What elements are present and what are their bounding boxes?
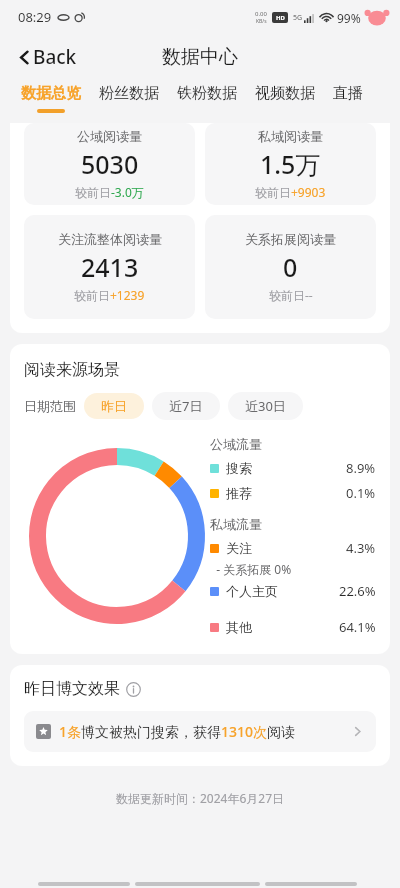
button[interactable]: 近7日 [152, 392, 220, 420]
staticText: 1条博文被热门搜索，获得1310次阅读 [59, 722, 296, 741]
button[interactable]: 关系拓展阅读量 [205, 215, 376, 319]
staticText: 0 [283, 250, 298, 284]
button[interactable]: 关注 [210, 539, 376, 557]
staticText: 较前日-3.0万 [75, 184, 144, 200]
button[interactable]: Back [10, 40, 83, 74]
staticText: 数据总览 [21, 84, 81, 103]
staticText: 个人主页 [226, 583, 278, 599]
button[interactable]: 导航 [135, 882, 260, 886]
staticText: 2413 [81, 250, 139, 284]
staticText: 私域阅读量 [258, 128, 323, 144]
staticText: - 关系拓展 0% [210, 561, 292, 577]
staticText: 较前日+9903 [255, 184, 326, 200]
button[interactable]: 搜索 [210, 459, 376, 477]
staticText: 阅读来源场景 [24, 360, 120, 380]
staticText: 较前日-- [269, 287, 313, 303]
staticText: 近30日 [245, 397, 286, 415]
button[interactable]: 公域阅读量 [24, 123, 195, 205]
staticText: 公域流量 [210, 436, 262, 452]
button[interactable]: 其他 [210, 618, 376, 636]
button[interactable]: 1条博文被热门搜索，获得1310次阅读 [24, 711, 376, 752]
staticText: KB/s [256, 18, 267, 25]
button[interactable]: 粉丝数据 [90, 80, 168, 109]
staticText: 5G [293, 13, 303, 23]
button[interactable]: 昨日 [84, 393, 144, 419]
staticText: 8.9% [346, 459, 376, 477]
button[interactable]: 近30日 [228, 392, 303, 420]
staticText: HD [276, 14, 285, 22]
staticText: 关系拓展阅读量 [245, 231, 336, 247]
staticText: 64.1% [339, 618, 376, 636]
staticText: 4.3% [346, 539, 376, 557]
staticText: 关注 [226, 540, 252, 556]
staticText: 0.00 [255, 10, 267, 18]
staticText: 昨日 [101, 398, 127, 414]
staticText: 0.1% [346, 484, 376, 502]
button[interactable]: 导航 [265, 882, 357, 886]
staticText: 粉丝数据 [99, 84, 159, 103]
button[interactable]: 私域阅读量 [205, 123, 376, 205]
button[interactable]: 说明 [126, 682, 141, 697]
staticText: 数据更新时间：2024年6月27日 [0, 790, 400, 806]
button[interactable]: 视频数据 [246, 80, 324, 109]
staticText: 公域阅读量 [77, 128, 142, 144]
staticText: 其他 [226, 619, 252, 635]
staticText: 1.5万 [260, 147, 321, 181]
staticText: 私域流量 [210, 516, 262, 532]
staticText: Back [33, 44, 77, 70]
staticText: 08:29 [18, 8, 52, 26]
button[interactable]: 导航 [38, 882, 130, 886]
button[interactable]: 推荐 [210, 484, 376, 502]
button[interactable]: 关注流整体阅读量 [24, 215, 195, 319]
button[interactable]: 直播 [324, 80, 372, 109]
staticText: 22.6% [339, 582, 376, 600]
staticText: 视频数据 [255, 84, 315, 103]
staticText: 日期范围 [24, 398, 76, 414]
button[interactable]: 铁粉数据 [168, 80, 246, 109]
staticText: 99% [337, 10, 361, 26]
button[interactable]: 个人主页 [210, 582, 376, 600]
staticText: 近7日 [169, 397, 203, 415]
staticText: 昨日博文效果 [24, 679, 120, 699]
button[interactable]: 数据总览 [12, 80, 90, 113]
staticText: 铁粉数据 [177, 84, 237, 103]
staticText: 直播 [333, 84, 363, 103]
staticText: 数据中心 [162, 45, 238, 69]
staticText: 推荐 [226, 485, 252, 501]
staticText: 较前日+1239 [74, 287, 145, 303]
staticText: 5030 [81, 147, 139, 181]
staticText: 关注流整体阅读量 [58, 231, 162, 247]
staticText: 搜索 [226, 460, 252, 476]
